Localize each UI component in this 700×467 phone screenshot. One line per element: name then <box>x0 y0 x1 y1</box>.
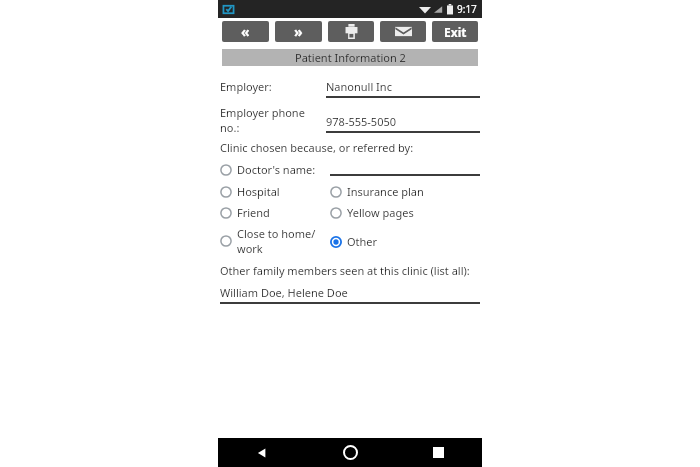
staticText: Friend <box>237 205 270 220</box>
staticText: Employer phone <box>220 105 305 120</box>
staticText: Other <box>347 234 378 249</box>
button[interactable]: Doctor's name: <box>220 162 330 177</box>
button[interactable]: Patient Information 2 <box>222 49 478 66</box>
button[interactable]: Hospital <box>220 184 330 199</box>
staticText: « <box>241 22 250 41</box>
button[interactable]: Friend <box>220 205 330 220</box>
staticText: Employer: <box>220 79 326 94</box>
button[interactable]: Recent apps <box>394 438 482 467</box>
staticText: 9:17 <box>457 2 477 16</box>
staticText: 978-555-5050 <box>326 114 397 129</box>
staticText: Clinic chosen because, or referred by: <box>220 140 414 155</box>
staticText: work <box>237 241 263 256</box>
button[interactable]: Exit <box>432 21 478 42</box>
button[interactable]: Yellow pages <box>330 205 480 220</box>
button[interactable]: Close to home/ <box>220 226 330 256</box>
staticText: Other family members seen at this clinic… <box>220 263 470 278</box>
button[interactable]: Print <box>328 21 374 42</box>
staticText: » <box>294 22 303 41</box>
button[interactable] <box>330 163 480 176</box>
button[interactable]: Next <box>275 21 322 42</box>
staticText: Patient Information 2 <box>295 50 406 65</box>
staticText: no.: <box>220 120 240 135</box>
staticText: Close to home/ <box>237 226 316 241</box>
button[interactable]: William Doe, Helene Doe <box>220 285 480 304</box>
button[interactable]: Home <box>306 438 394 467</box>
button[interactable]: Other <box>330 234 480 249</box>
button[interactable]: Mail <box>380 21 426 42</box>
staticText: William Doe, Helene Doe <box>220 285 348 300</box>
staticText: Yellow pages <box>347 205 414 220</box>
button[interactable]: Nanonull Inc <box>326 79 480 98</box>
button[interactable]: Back <box>218 438 306 467</box>
button[interactable]: Insurance plan <box>330 184 480 199</box>
button[interactable]: Previous <box>222 21 269 42</box>
staticText: Hospital <box>237 184 280 199</box>
staticText: Nanonull Inc <box>326 79 392 94</box>
staticText: Exit <box>444 24 467 40</box>
staticText: Insurance plan <box>347 184 424 199</box>
button[interactable]: 978-555-5050 <box>326 105 480 133</box>
staticText: Doctor's name: <box>237 162 316 177</box>
